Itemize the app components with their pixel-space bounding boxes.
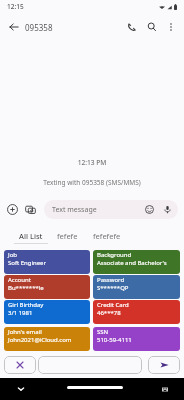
staticText: 095358 <box>25 22 53 33</box>
button[interactable]: Background <box>93 250 180 274</box>
button[interactable]: Job <box>4 250 90 274</box>
staticText: SSN <box>97 328 109 336</box>
staticText: S******QP <box>97 284 129 292</box>
button[interactable]: SSN <box>93 327 180 351</box>
staticText: Texting with 095358 (SMS/MMS) <box>0 178 184 187</box>
button[interactable]: Credit Card <box>93 300 180 324</box>
staticText: Soft Engineer <box>8 259 46 267</box>
staticText: 46***78 <box>97 309 121 317</box>
button[interactable]: Add <box>3 200 21 218</box>
button[interactable]: More options <box>162 18 180 36</box>
button[interactable]: All List <box>14 228 48 244</box>
staticText: Associate and Bachelor's <box>97 259 167 267</box>
button[interactable]: Call <box>122 17 142 37</box>
button[interactable]: Girl Birthday <box>4 300 90 324</box>
button[interactable]: Back <box>4 17 24 37</box>
staticText: Account <box>8 276 31 284</box>
button[interactable]: Send <box>148 356 180 374</box>
staticText: John's email <box>8 328 42 336</box>
button[interactable]: Take photo <box>21 200 39 218</box>
button[interactable]: Account <box>4 275 90 299</box>
button[interactable]: Search <box>142 17 162 37</box>
staticText: Bu*******le <box>8 284 44 292</box>
button[interactable] <box>38 356 142 374</box>
staticText: 3/1 1981 <box>8 309 33 317</box>
button[interactable]: fefefefe <box>93 231 121 241</box>
button[interactable]: John's email <box>4 327 90 351</box>
staticText: 510-59-4111 <box>97 336 132 344</box>
button[interactable]: Cancel <box>4 356 36 374</box>
staticText: John2021@iCloud.com <box>8 336 72 344</box>
staticText: Credit Card <box>97 301 129 309</box>
staticText: Job <box>8 251 17 259</box>
button[interactable]: Hide keyboard <box>13 381 29 397</box>
staticText: Girl Birthday <box>8 301 44 309</box>
button[interactable]: Keyboard <box>158 382 172 396</box>
button[interactable]: Password <box>93 275 180 299</box>
staticText: Password <box>97 276 125 284</box>
staticText: 12:15 <box>7 2 24 11</box>
button[interactable]: fefefe <box>57 231 78 241</box>
staticText: All List <box>19 231 43 241</box>
staticText: 12:13 PM <box>0 158 184 167</box>
button[interactable]: Text message <box>44 200 178 219</box>
staticText: Text message <box>52 205 97 215</box>
staticText: Background <box>97 251 132 259</box>
